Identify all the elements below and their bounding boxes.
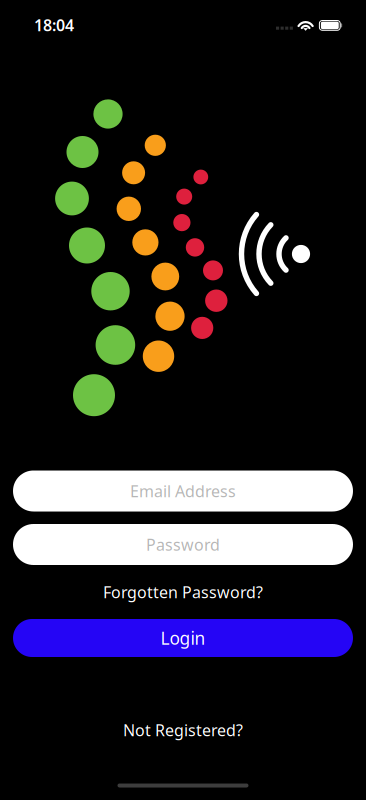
staticText: Forgotten Password? xyxy=(103,581,263,603)
button[interactable]: Password xyxy=(13,524,353,565)
staticText: Email Address xyxy=(130,480,236,502)
button[interactable]: Forgotten Password? xyxy=(83,579,283,605)
staticText: Not Registered? xyxy=(123,719,243,741)
button[interactable]: Email Address xyxy=(13,470,353,511)
button[interactable]: Login xyxy=(13,619,353,657)
button[interactable]: Not Registered? xyxy=(98,717,268,743)
staticText: Login xyxy=(160,626,205,649)
staticText: 18:04 xyxy=(34,14,74,36)
staticText: Password xyxy=(146,534,220,555)
